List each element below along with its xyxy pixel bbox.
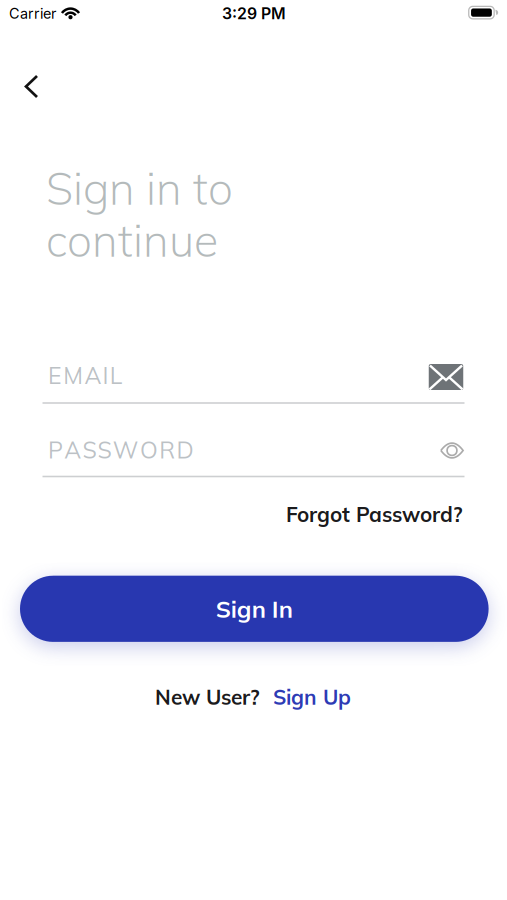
staticText: Sign In xyxy=(216,594,293,624)
staticText: 3:29 PM xyxy=(222,4,286,23)
staticText: Carrier xyxy=(9,5,56,22)
staticText: R xyxy=(159,435,175,464)
staticText: Forgot Password? xyxy=(286,501,463,527)
staticText: S xyxy=(82,435,96,464)
staticText: L xyxy=(110,361,123,390)
button[interactable]: Forgot Password? xyxy=(286,501,463,527)
staticText: A xyxy=(84,361,101,390)
staticText: New User? xyxy=(155,684,260,710)
staticText: O xyxy=(140,435,158,464)
staticText: M xyxy=(63,361,83,390)
button[interactable]: Sign In xyxy=(20,576,489,642)
staticText: Sign Up xyxy=(273,684,351,710)
staticText: E xyxy=(48,361,62,390)
button[interactable]: Sign Up xyxy=(273,684,351,710)
staticText: D xyxy=(176,435,193,464)
button[interactable]: Back xyxy=(9,64,53,108)
staticText: Sign in to xyxy=(46,160,233,216)
staticText: S xyxy=(98,435,112,464)
staticText: P xyxy=(48,435,63,464)
staticText: I xyxy=(103,361,109,390)
staticText: A xyxy=(64,435,81,464)
staticText: W xyxy=(113,435,139,464)
staticText: continue xyxy=(46,212,218,268)
